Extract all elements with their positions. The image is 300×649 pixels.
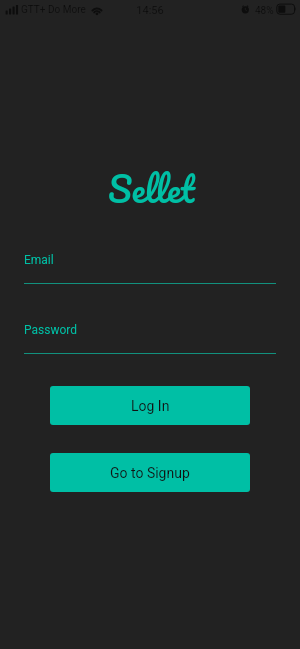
other: Battery 48 percent [276,4,297,15]
staticText: Sellet [108,159,195,219]
staticText: GTT+ Do More [21,4,86,16]
button[interactable]: Go to Signup [50,453,250,492]
other: Alarm set [241,4,251,15]
button[interactable]: Password [24,319,276,355]
other: Wi-Fi [90,3,104,16]
staticText: Go to Signup [110,465,190,481]
button[interactable]: Log In [50,386,250,425]
staticText: 48% [255,5,274,17]
staticText: Email [24,253,54,267]
button[interactable]: Email [24,249,276,285]
staticText: Password [24,323,78,337]
staticText: Log In [131,398,170,414]
staticText: 14:56 [0,4,300,17]
other: Cellular signal [5,4,19,15]
